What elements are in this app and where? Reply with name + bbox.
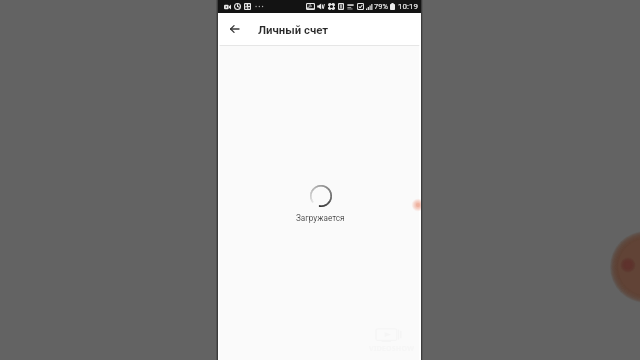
button[interactable]: Back — [221, 13, 247, 45]
staticText: Загружается — [296, 213, 345, 223]
staticText: 10:19 — [398, 2, 418, 11]
staticText: Личный счет — [258, 23, 329, 36]
staticText: 79% — [374, 2, 388, 11]
